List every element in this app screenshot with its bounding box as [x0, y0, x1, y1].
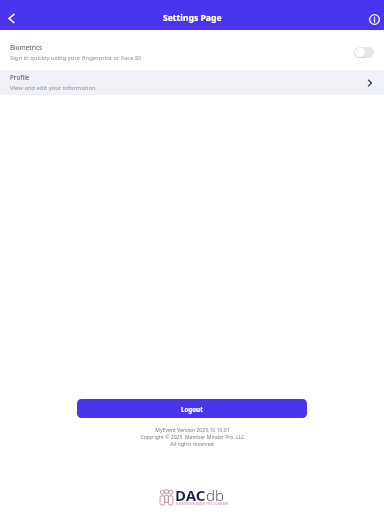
- staticText: Copyright © 2025 Member Minder Pro, LLC: [140, 434, 245, 441]
- staticText: DAC: [175, 485, 206, 505]
- staticText: View and edit your information: [10, 84, 96, 92]
- button[interactable]: Info: [363, 8, 384, 30]
- button[interactable]: Logout: [77, 399, 307, 418]
- button[interactable]: Biometrics: [0, 37, 384, 67]
- button[interactable]: Profile: [0, 70, 384, 95]
- staticText: Biometrics: [10, 43, 43, 52]
- staticText: MyEvent Version 2025.10.10.01: [155, 427, 230, 434]
- staticText: Sign in quickly using your fingerprint o…: [10, 54, 142, 62]
- staticText: db: [206, 485, 224, 505]
- staticText: Settings Page: [163, 12, 222, 24]
- staticText: Profile: [10, 73, 30, 82]
- staticText: A MEMBER MINDER PRO COMPANY: [176, 502, 229, 506]
- button[interactable]: Biometrics toggle: [354, 47, 374, 58]
- button[interactable]: Back: [0, 7, 22, 29]
- staticText: All rights reserved: [170, 441, 214, 448]
- staticText: Logout: [181, 405, 203, 413]
